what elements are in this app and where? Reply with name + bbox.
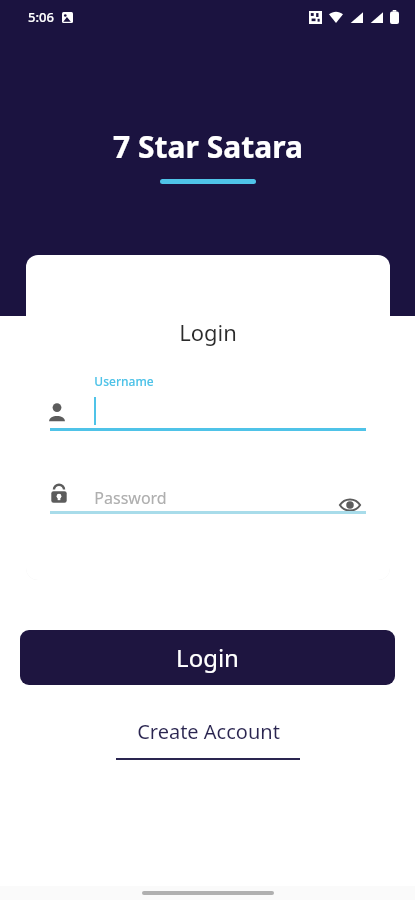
button[interactable]: Create Account	[106, 716, 310, 762]
staticText: Create Account	[137, 718, 280, 745]
staticText: Login	[176, 641, 239, 674]
staticText: Password	[94, 487, 167, 509]
other: Username	[46, 401, 68, 423]
button[interactable]: Login	[20, 630, 395, 685]
other: Password	[48, 483, 70, 505]
staticText: 5:06	[28, 8, 54, 26]
button[interactable]: Show password	[332, 487, 368, 523]
staticText: Login	[179, 317, 237, 347]
staticText: Username	[94, 373, 154, 389]
staticText: 7 Star Satara	[113, 126, 303, 167]
